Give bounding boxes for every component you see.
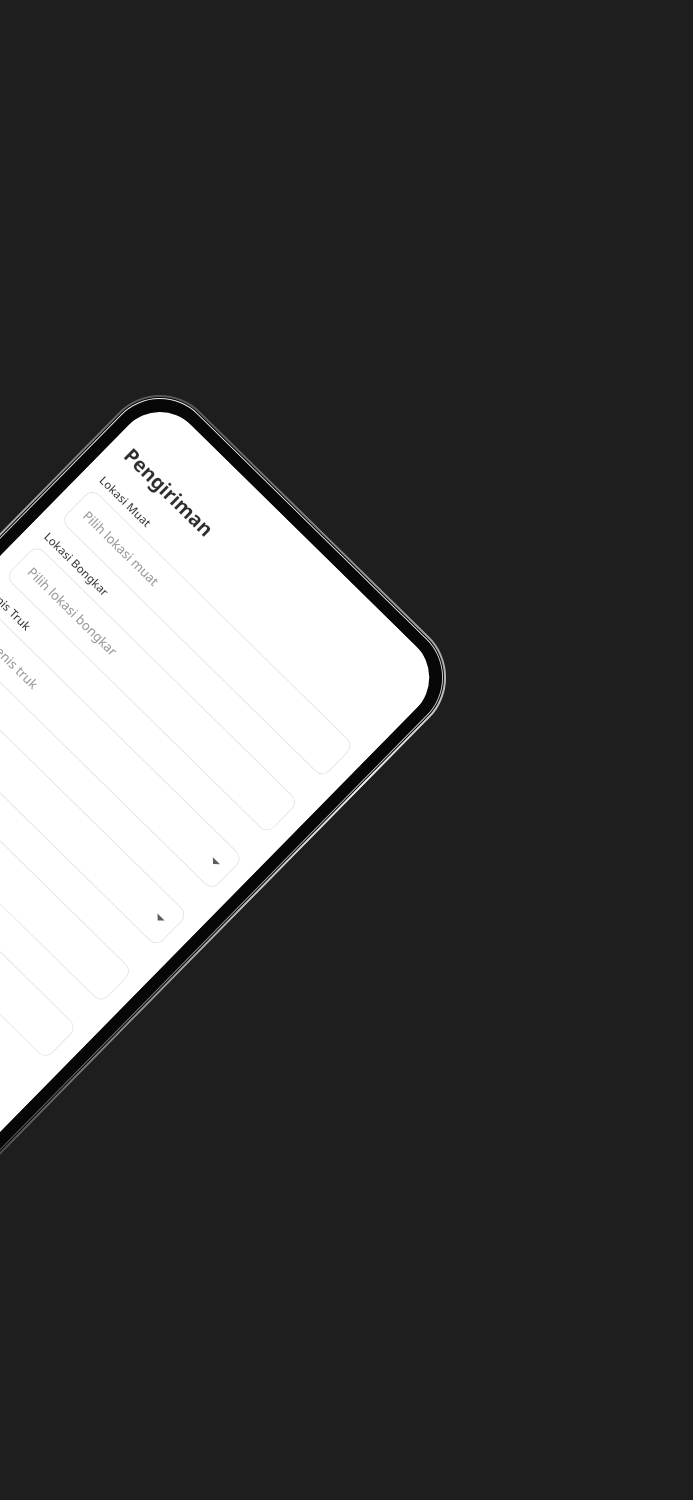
staticText: Lokasi Muat — [96, 473, 155, 531]
staticText: Jenis Truk — [0, 585, 35, 635]
staticText: Pilih lokasi muat — [79, 507, 163, 590]
other: Open dropdown — [208, 855, 222, 869]
button[interactable]: Pilih jenis truk — [0, 600, 244, 891]
button[interactable]: Pilih lokasi bongkar — [5, 544, 299, 835]
staticText: Pengiriman — [118, 442, 220, 543]
button[interactable]: Pilih lokasi muat — [60, 488, 355, 778]
other: Open dropdown — [153, 911, 167, 925]
button[interactable]: Pilih jenis muatan — [0, 657, 189, 947]
staticText: Pilih jenis muatan — [0, 676, 3, 765]
button[interactable]: Pilih tanggal — [0, 713, 133, 1004]
staticText: Pilih jenis truk — [0, 619, 43, 693]
button[interactable]: 2 — [0, 769, 78, 1060]
staticText: Lokasi Bongkar — [40, 529, 112, 600]
staticText: Pilih lokasi bongkar — [24, 563, 122, 660]
